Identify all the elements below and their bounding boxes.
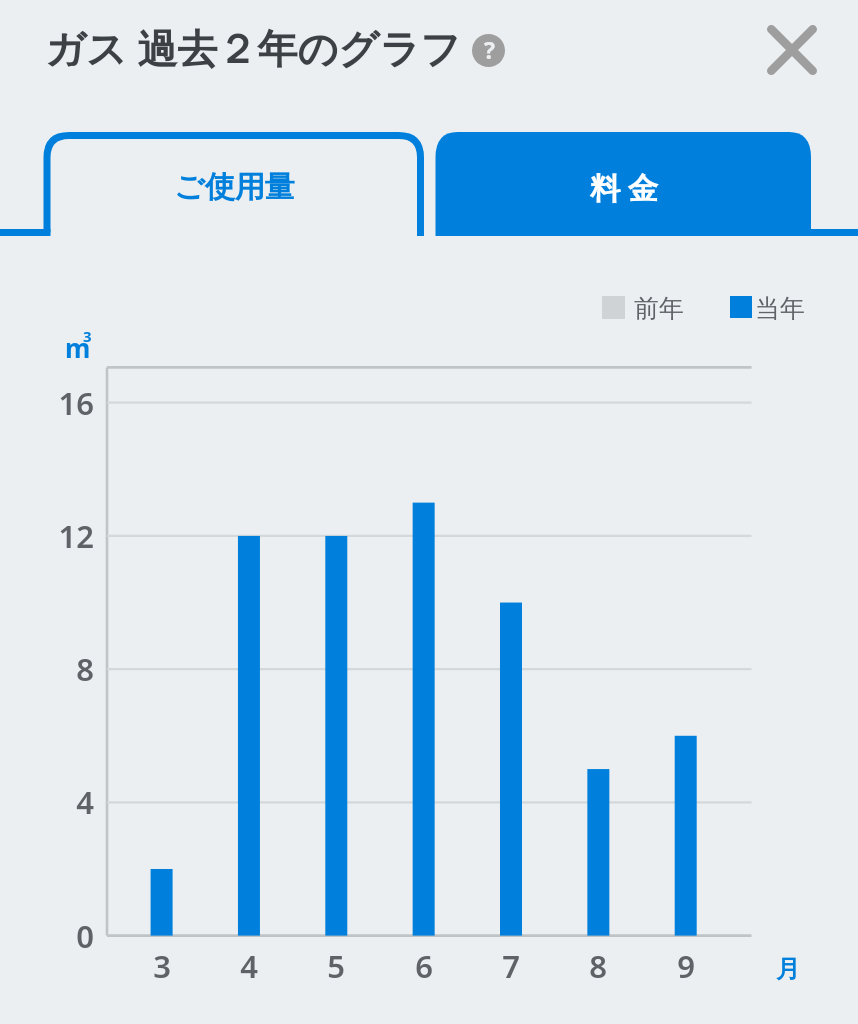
staticText: 4 (224, 945, 274, 987)
button[interactable]: 閉じる (747, 10, 837, 90)
staticText: 9 (661, 945, 711, 987)
staticText: 料 金 (590, 167, 658, 208)
staticText: 前年 (634, 293, 684, 324)
button[interactable]: ヘルプ (466, 28, 510, 72)
staticText: 3 (137, 945, 187, 987)
staticText: 4 (44, 781, 94, 823)
staticText: 8 (573, 945, 623, 987)
staticText: ガス 過去２年のグラフ (45, 20, 462, 75)
staticText: ? (484, 34, 495, 65)
staticText: 0 (44, 915, 94, 957)
button[interactable]: ご使用量 (47, 137, 421, 237)
staticText: 6 (399, 945, 449, 987)
staticText: 7 (486, 945, 536, 987)
staticText: 8 (44, 648, 94, 690)
staticText: 16 (44, 382, 94, 424)
staticText: 当年 (755, 293, 805, 324)
staticText: ご使用量 (174, 168, 295, 206)
staticText: m (65, 330, 91, 365)
staticText: 月 (776, 954, 800, 984)
staticText: 12 (44, 515, 94, 557)
button[interactable]: 料 金 (436, 137, 811, 237)
staticText: 5 (311, 945, 361, 987)
staticText: 3 (83, 326, 92, 346)
